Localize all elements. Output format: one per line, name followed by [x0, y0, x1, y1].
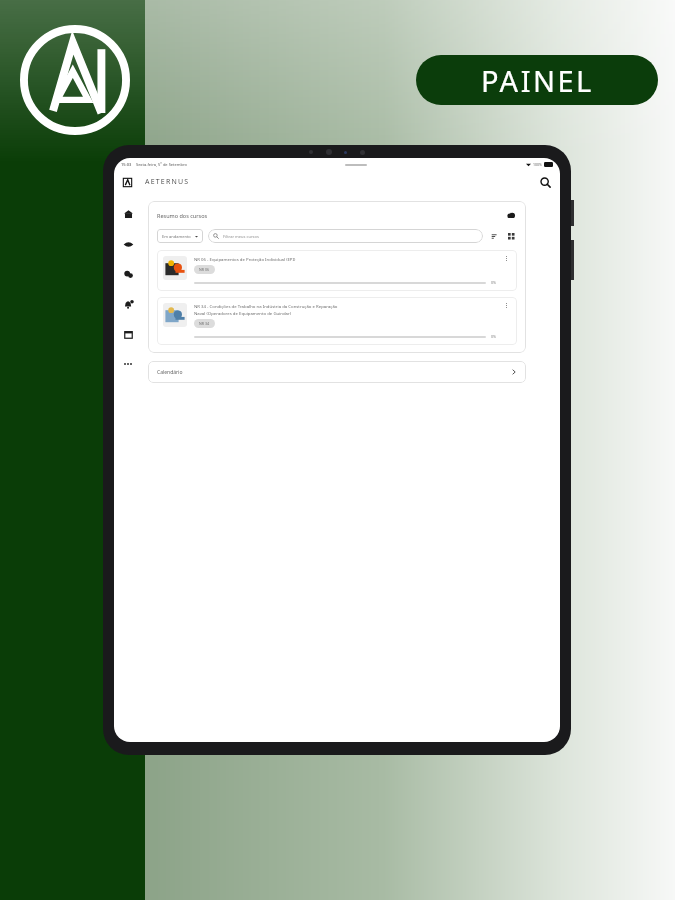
- staticText: NR 34 - Condições de Trabalho na Indústr…: [194, 303, 338, 309]
- staticText: PAINEL: [481, 61, 594, 100]
- button[interactable]: More options: [501, 256, 511, 276]
- button[interactable]: Em andamento: [157, 229, 203, 243]
- button[interactable]: Download: [504, 209, 517, 222]
- staticText: Resumo dos cursos: [157, 212, 208, 219]
- staticText: 15:03: [121, 162, 132, 167]
- staticText: NR 06 - Equipamentos de Proteção Individ…: [194, 256, 296, 262]
- button[interactable]: NR 34 - Condições de Trabalho na Indústr…: [157, 297, 517, 345]
- button[interactable]: Messages: [119, 265, 137, 283]
- button[interactable]: Search: [538, 175, 552, 189]
- button[interactable]: Filtrar meus cursos: [208, 229, 483, 243]
- staticText: AETERNUS: [145, 177, 190, 187]
- button[interactable]: More options: [501, 303, 511, 323]
- staticText: Sexta-feira, 5º de Setembro: [136, 162, 187, 167]
- staticText: Filtrar meus cursos: [223, 234, 259, 239]
- button[interactable]: Notifications: [119, 295, 137, 313]
- staticText: 0%: [491, 280, 497, 285]
- staticText: 100%: [533, 162, 542, 167]
- staticText: 0%: [491, 334, 497, 339]
- button[interactable]: Sort: [489, 231, 500, 242]
- button[interactable]: NR 06 - Equipamentos de Proteção Individ…: [157, 250, 517, 291]
- button[interactable]: Calendário: [148, 361, 526, 383]
- button[interactable]: Calendar: [119, 325, 137, 343]
- button[interactable]: Menu: [122, 177, 133, 188]
- staticText: NR 34: [199, 321, 210, 326]
- staticText: Calendário: [157, 369, 183, 376]
- staticText: Em andamento: [162, 234, 191, 239]
- other: Aeternus logo: [20, 25, 130, 135]
- staticText: Naval (Operadores de Equipamento de Guin…: [194, 310, 292, 316]
- staticText: NR 06: [199, 267, 210, 272]
- button[interactable]: Visibility: [119, 235, 137, 253]
- button[interactable]: More: [121, 357, 135, 371]
- button[interactable]: Home: [119, 205, 137, 223]
- button[interactable]: PAINEL: [416, 55, 658, 105]
- button[interactable]: Grid view: [506, 231, 517, 242]
